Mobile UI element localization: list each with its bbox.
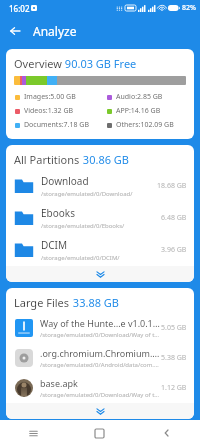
staticText: APP:14.16 GB (116, 106, 161, 116)
button[interactable]: Ebooks (6, 202, 194, 234)
staticText: /storage/emulated/0/Download/ (41, 190, 133, 198)
staticText: /storage/emulated/0/Download/Way of the… (40, 391, 161, 399)
button[interactable]: DCIM (6, 234, 194, 266)
staticText: Documents:7.18 GB (24, 120, 89, 130)
button[interactable]: Home (66, 420, 133, 446)
button[interactable]: base.apk (6, 373, 194, 403)
staticText: Audio:2.85 GB (116, 92, 163, 102)
staticText: Analyze (33, 23, 77, 39)
staticText: 90.03 GB Free (62, 56, 137, 71)
staticText: /storage/emulated/0/Android/data/com.bra… (40, 361, 161, 369)
button[interactable]: Back (0, 16, 30, 46)
staticText: /storage/emulated/0/Ebooks/ (41, 222, 125, 230)
button[interactable]: Show more (6, 403, 194, 419)
button[interactable]: Back (133, 420, 200, 446)
staticText: Overview (14, 56, 62, 71)
staticText: Large Files (14, 295, 70, 310)
staticText: 16:02 (9, 3, 30, 14)
staticText: Ebooks (41, 206, 75, 220)
staticText: DCIM (41, 238, 68, 252)
staticText: 3.96 GB (161, 245, 187, 255)
staticText: Download (41, 174, 89, 188)
staticText: 18.68 GB (157, 181, 187, 191)
staticText: base.apk (40, 377, 78, 389)
staticText: Way of the Hunte…e v1.0.12 mod.zip (40, 317, 161, 329)
button[interactable]: Way of the Hunte…e v1.0.12 mod.zip (6, 313, 194, 343)
staticText: 30.86 GB (80, 152, 129, 167)
staticText: Others:102.09 GB (116, 120, 174, 130)
staticText: 6.48 GB (161, 213, 187, 223)
staticText: Images:5.00 GB (24, 92, 76, 102)
staticText: /storage/emulated/0/DCIM/ (41, 254, 120, 262)
staticText: Videos:1.32 GB (24, 106, 74, 116)
button[interactable]: Show more (6, 266, 194, 282)
staticText: .org.chromium.Chromium.vV3uUr (40, 347, 161, 359)
staticText: 33.88 GB (70, 295, 119, 310)
button[interactable]: Download (6, 170, 194, 202)
staticText: 82% (182, 3, 196, 13)
staticText: All Partitions (14, 152, 80, 167)
staticText: 5.38 GB (161, 353, 187, 363)
staticText: /storage/emulated/0/Download/Way of the… (40, 331, 161, 339)
staticText: 1.12 GB (161, 383, 187, 393)
button[interactable]: .org.chromium.Chromium.vV3uUr (6, 343, 194, 373)
staticText: 5.05 GB (161, 323, 187, 333)
button[interactable]: Recent apps (0, 420, 66, 446)
